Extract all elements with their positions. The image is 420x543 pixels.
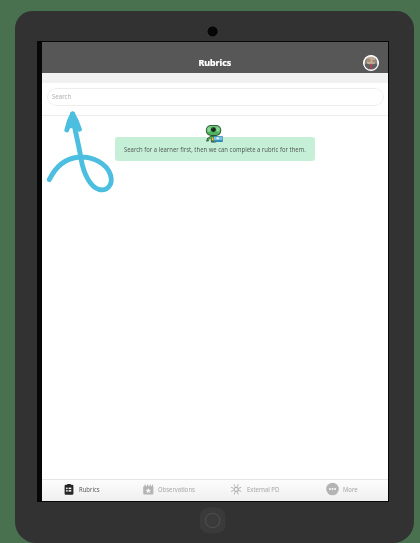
button[interactable] (220, 479, 306, 501)
staticText: Search for a learner first, then we can … (124, 144, 306, 154)
staticText: More (343, 484, 358, 494)
staticText: External PD (247, 484, 280, 494)
button[interactable]: Profile (363, 55, 379, 71)
button[interactable]: Search (47, 88, 384, 106)
button[interactable] (132, 479, 218, 501)
staticText: Rubrics (79, 484, 100, 494)
staticText: Rubrics (198, 56, 231, 69)
button[interactable] (53, 479, 139, 501)
staticText: Observations (158, 484, 196, 494)
staticText: Search (52, 91, 72, 101)
button[interactable] (315, 479, 401, 501)
